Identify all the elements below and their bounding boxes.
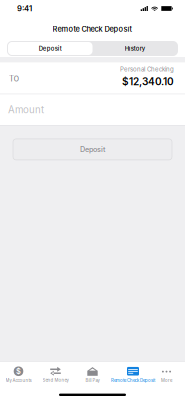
- staticText: My Accounts: [5, 378, 31, 383]
- staticText: More: [161, 378, 172, 383]
- button[interactable]: $: [0, 366, 37, 383]
- staticText: History: [125, 45, 145, 52]
- staticText: $12,340.10: [122, 75, 174, 88]
- staticText: Deposit: [80, 145, 105, 154]
- button[interactable]: More: [148, 366, 185, 383]
- staticText: Personal Checking: [120, 66, 174, 73]
- button[interactable]: Send Money: [37, 366, 74, 383]
- staticText: Remote Check Deposit: [52, 24, 132, 33]
- button[interactable]: Bill Pay: [74, 366, 111, 383]
- staticText: Deposit: [39, 45, 62, 52]
- staticText: Remote Check Deposit: [111, 378, 155, 383]
- button[interactable]: Remote Check Deposit: [111, 366, 148, 383]
- staticText: Send Money: [42, 378, 68, 383]
- staticText: Amount: [8, 104, 44, 116]
- button[interactable]: History: [92, 42, 177, 55]
- staticText: Bill Pay: [85, 378, 99, 383]
- staticText: $: [16, 367, 21, 376]
- staticText: To: [8, 72, 19, 84]
- button[interactable]: Deposit: [8, 42, 92, 55]
- staticText: 9:41: [17, 4, 32, 13]
- button[interactable]: Deposit: [13, 139, 172, 160]
